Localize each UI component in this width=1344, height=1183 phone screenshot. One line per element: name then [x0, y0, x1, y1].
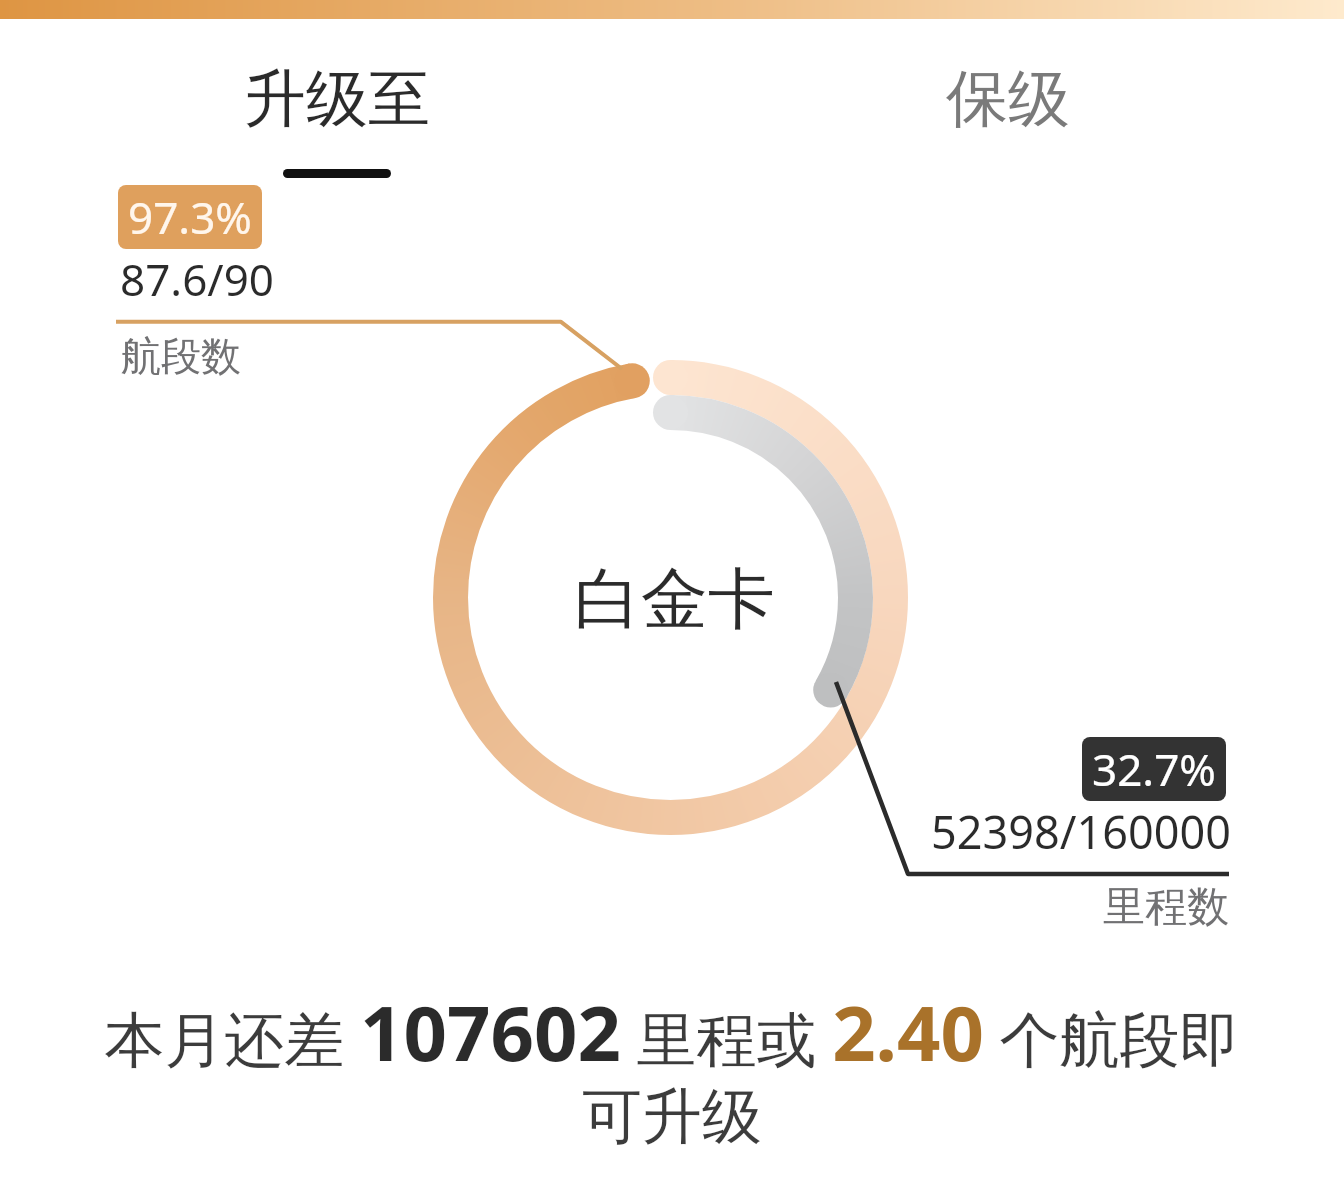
staticText: 升级至	[244, 60, 430, 138]
staticText: 本月还差 107602 里程或 2.40 个航段即可升级	[88, 980, 1256, 1155]
button[interactable]: 升级至	[0, 34, 672, 204]
staticText: 97.3%	[128, 187, 252, 247]
button[interactable]: 97.3%	[116, 182, 416, 377]
staticText: 白金卡	[574, 557, 775, 641]
button[interactable]: 保级	[672, 34, 1344, 204]
staticText: 里程数	[1103, 881, 1229, 934]
button[interactable]: 32.7%	[877, 734, 1229, 934]
staticText: 航段数	[121, 331, 241, 381]
staticText: 32.7%	[1092, 739, 1216, 799]
staticText: 52398/160000	[931, 801, 1231, 862]
other: 会员等级进度图：航段数 97.3%，里程数 32.7%	[0, 0, 1344, 1183]
staticText: 87.6/90	[120, 249, 274, 309]
staticText: 保级	[946, 60, 1070, 138]
